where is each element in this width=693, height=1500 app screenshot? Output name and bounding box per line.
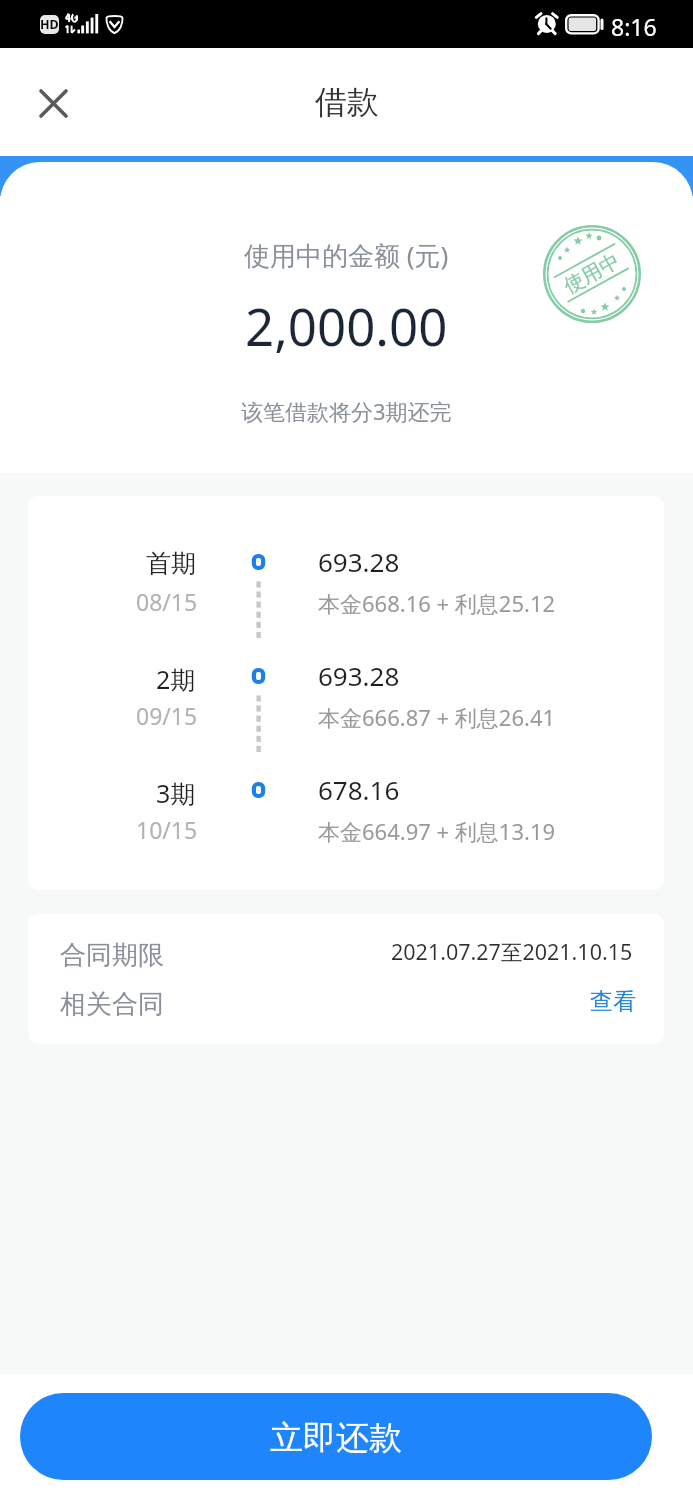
staticText: 2021.07.27至2021.10.15 (391, 937, 633, 966)
button[interactable]: 立即还款 (20, 1393, 652, 1480)
staticText: 693.28 (318, 658, 400, 693)
staticText: 8:16 (611, 11, 657, 42)
staticText: 本金668.16 + 利息25.12 (318, 588, 556, 618)
staticText: 2,000.00 (245, 291, 448, 360)
button[interactable]: 相关合同 (28, 976, 664, 1030)
staticText: 693.28 (318, 544, 400, 579)
staticText: 查看 (590, 987, 636, 1016)
staticText: 678.16 (318, 772, 400, 807)
staticText: 2期 (156, 662, 196, 696)
staticText: 合同期限 (60, 939, 164, 972)
staticText: 相关合同 (60, 988, 164, 1021)
staticText: 首期 (146, 548, 196, 579)
staticText: 09/15 (136, 700, 198, 731)
staticText: 本金666.87 + 利息26.41 (318, 702, 556, 732)
staticText: 该笔借款将分3期还完 (241, 396, 452, 426)
staticText: 本金664.97 + 利息13.19 (318, 816, 556, 846)
staticText: 立即还款 (270, 1417, 402, 1459)
staticText: 08/15 (136, 586, 198, 617)
staticText: 使用中的金额 (元) (244, 237, 449, 273)
button[interactable]: Close (23, 73, 83, 133)
staticText: 借款 (315, 82, 379, 122)
staticText: 10/15 (136, 814, 198, 845)
staticText: 使用中 (559, 248, 624, 299)
staticText: 3期 (156, 776, 196, 810)
staticText: HD (40, 16, 59, 33)
